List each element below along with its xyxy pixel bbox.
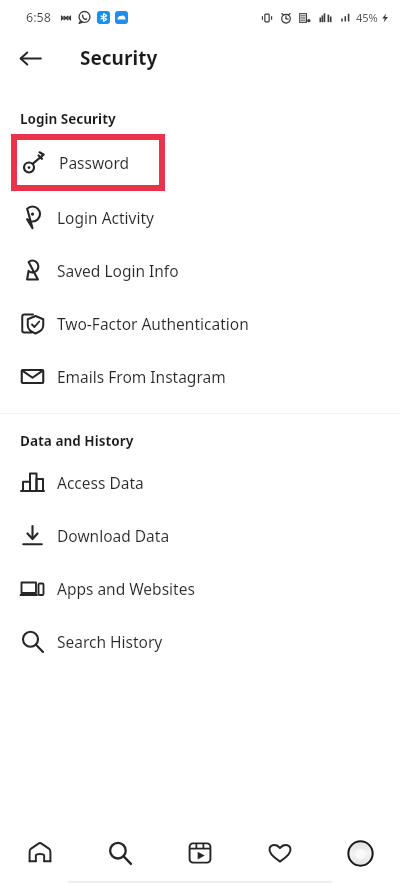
button[interactable]: Emails From Instagram xyxy=(0,350,400,403)
button[interactable]: Download Data xyxy=(0,509,400,562)
button[interactable]: Activity xyxy=(240,828,320,878)
staticText: Password xyxy=(59,152,130,173)
staticText: Download Data xyxy=(57,525,170,546)
button[interactable]: Back xyxy=(8,36,52,80)
staticText: Login Security xyxy=(20,110,116,128)
staticText: Login Activity xyxy=(57,207,154,228)
button[interactable]: Login Activity xyxy=(0,191,400,244)
staticText: 6:58 xyxy=(26,9,51,26)
staticText: Emails From Instagram xyxy=(57,366,226,387)
button[interactable]: Search History xyxy=(0,615,400,668)
staticText: Access Data xyxy=(57,472,144,493)
button[interactable]: Access Data xyxy=(0,456,400,509)
button[interactable]: Home xyxy=(0,828,80,878)
button[interactable]: Apps and Websites xyxy=(0,562,400,615)
button[interactable]: Two-Factor Authentication xyxy=(0,297,400,350)
staticText: Search History xyxy=(57,631,163,652)
staticText: Security xyxy=(80,45,158,71)
staticText: Two-Factor Authentication xyxy=(57,313,249,334)
staticText: Data and History xyxy=(20,432,134,450)
staticText: 45% xyxy=(356,10,378,25)
button[interactable]: Saved Login Info xyxy=(0,244,400,297)
button[interactable]: Search xyxy=(80,828,160,878)
staticText: Saved Login Info xyxy=(57,260,179,281)
button[interactable]: Profile xyxy=(320,828,400,878)
button[interactable]: Reels xyxy=(160,828,240,878)
button[interactable]: Password xyxy=(17,140,159,185)
staticText: Apps and Websites xyxy=(57,578,195,599)
